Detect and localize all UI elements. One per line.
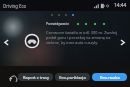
- staticText: Raport z trasy: [23, 75, 49, 80]
- button[interactable]: Eco-nauka: [92, 73, 127, 81]
- button[interactable]: Back: [8, 74, 18, 84]
- button[interactable]: Next: [117, 37, 128, 48]
- staticText: Przewidywanie: [46, 21, 70, 25]
- staticText: Czerwone światło w odl. 300 m. Zwolnij p…: [46, 30, 126, 45]
- button[interactable]: Eco-punktacja: [55, 73, 90, 81]
- button[interactable]: Raport z trasy: [18, 73, 53, 81]
- button[interactable]: Previous: [1, 37, 12, 48]
- staticText: Eco-punktacja: [59, 75, 86, 80]
- staticText: Driving Eco: [3, 3, 27, 9]
- staticText: 14:44: [114, 2, 127, 9]
- staticText: Eco-nauka: [100, 75, 120, 80]
